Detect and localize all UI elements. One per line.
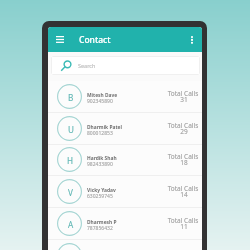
staticText: 18 bbox=[154, 158, 202, 167]
staticText: Contact bbox=[79, 34, 111, 46]
button[interactable]: U bbox=[48, 113, 202, 145]
button[interactable]: More options bbox=[182, 30, 202, 50]
staticText: Total Calls bbox=[153, 121, 202, 130]
button[interactable]: S bbox=[48, 240, 202, 250]
staticText: Dharmesh P bbox=[87, 219, 117, 226]
staticText: Search bbox=[78, 62, 96, 69]
staticText: H bbox=[67, 155, 74, 166]
staticText: 982433890 bbox=[87, 161, 113, 168]
button[interactable]: Search bbox=[51, 56, 200, 75]
staticText: Total Calls bbox=[153, 152, 202, 161]
staticText: Total Calls bbox=[153, 89, 202, 98]
button[interactable]: A bbox=[48, 208, 202, 240]
staticText: U bbox=[68, 124, 74, 135]
staticText: 11 bbox=[154, 222, 202, 231]
staticText: 14 bbox=[154, 190, 202, 199]
staticText: 902345890 bbox=[87, 98, 113, 105]
staticText: 800012853 bbox=[87, 130, 113, 137]
staticText: B bbox=[68, 92, 74, 103]
button[interactable]: H bbox=[48, 144, 202, 176]
staticText: Vicky Yadav bbox=[87, 187, 116, 194]
staticText: 29 bbox=[154, 127, 202, 136]
staticText: 630259745 bbox=[87, 193, 113, 200]
button[interactable]: V bbox=[48, 176, 202, 208]
staticText: 31 bbox=[154, 95, 202, 104]
staticText: A bbox=[68, 219, 74, 230]
staticText: 787856432 bbox=[87, 225, 113, 232]
button[interactable]: B bbox=[48, 81, 202, 113]
staticText: Total Calls bbox=[153, 216, 202, 225]
button[interactable]: Open navigation menu bbox=[49, 29, 70, 50]
staticText: Total Calls bbox=[153, 184, 202, 193]
staticText: Mitesh Dave bbox=[87, 92, 118, 99]
staticText: Dharmik Patel bbox=[87, 124, 122, 131]
staticText: Hardik Shah bbox=[87, 155, 117, 162]
staticText: V bbox=[68, 187, 73, 198]
